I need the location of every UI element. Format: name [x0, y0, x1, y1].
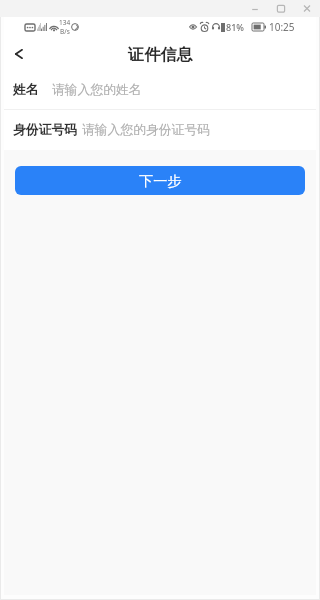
staticText: 姓名 — [13, 82, 39, 98]
staticText: 下一步 — [139, 172, 182, 190]
button[interactable]: 下一步 — [15, 166, 305, 195]
staticText: 10:25 — [269, 20, 295, 34]
staticText: 请输入您的身份证号码 — [82, 122, 210, 138]
button[interactable]: Close — [294, 0, 320, 17]
button[interactable]: Back — [5, 40, 33, 68]
staticText: B/s — [60, 27, 70, 36]
button[interactable]: Maximize — [268, 0, 294, 17]
staticText: 请输入您的姓名 — [52, 82, 142, 98]
button[interactable]: Minimize — [242, 0, 268, 17]
staticText: 证件信息 — [128, 44, 193, 64]
staticText: 81% — [226, 21, 244, 33]
button[interactable]: 身份证号码 — [0, 110, 320, 150]
staticText: 身份证号码 — [13, 122, 77, 138]
button[interactable]: 姓名 — [0, 70, 320, 109]
staticText: 134 — [59, 18, 71, 27]
